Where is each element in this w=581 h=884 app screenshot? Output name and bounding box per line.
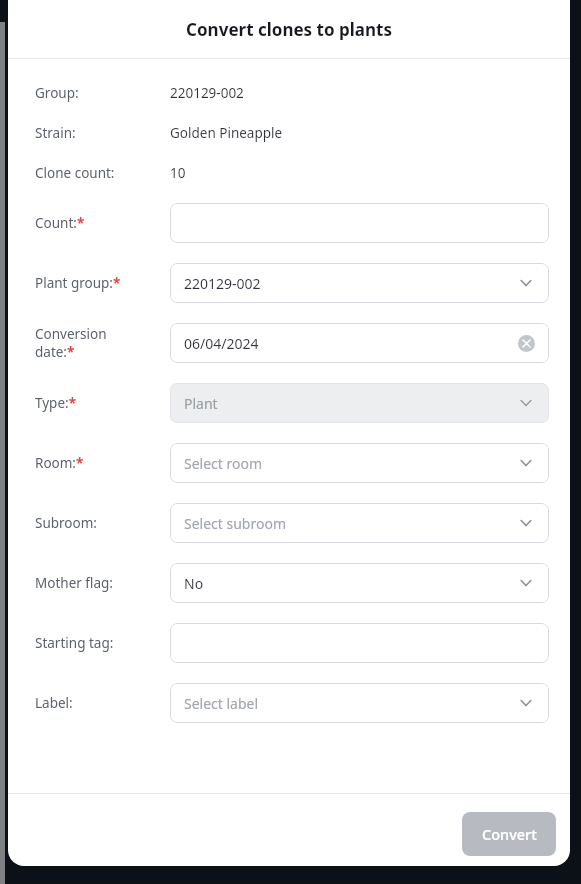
staticText: Convert clones to plants: [186, 18, 392, 41]
staticText: 220129-002: [184, 274, 261, 293]
staticText: Plant: [184, 394, 218, 413]
staticText: No: [184, 574, 204, 593]
button[interactable]: [170, 623, 549, 663]
staticText: Count:*: [35, 214, 85, 232]
button[interactable]: [170, 203, 549, 243]
staticText: Type:*: [35, 394, 76, 412]
button[interactable]: Clear date: [518, 335, 535, 352]
staticText: Mother flag:: [35, 574, 113, 592]
button[interactable]: Select label: [170, 683, 549, 723]
button[interactable]: Convert: [462, 812, 556, 856]
staticText: Clone count:: [35, 164, 115, 182]
staticText: 10: [170, 164, 186, 182]
staticText: 06/04/2024: [184, 334, 259, 353]
button[interactable]: No: [170, 563, 549, 603]
button[interactable]: 220129-002: [170, 263, 549, 303]
staticText: date:*: [35, 343, 75, 361]
button[interactable]: Plant: [170, 383, 549, 423]
button[interactable]: 06/04/2024: [170, 323, 549, 363]
staticText: Room:*: [35, 454, 84, 472]
staticText: Convert: [482, 824, 537, 844]
staticText: Starting tag:: [35, 634, 114, 652]
staticText: Golden Pineapple: [170, 124, 283, 142]
staticText: Strain:: [35, 124, 76, 142]
staticText: Conversion: [35, 325, 107, 343]
staticText: Select subroom: [184, 514, 287, 533]
button[interactable]: Select room: [170, 443, 549, 483]
staticText: 220129-002: [170, 84, 244, 102]
staticText: Select label: [184, 694, 259, 713]
staticText: Plant group:*: [35, 274, 121, 292]
staticText: Group:: [35, 84, 79, 102]
staticText: Label:: [35, 694, 73, 712]
staticText: Subroom:: [35, 514, 97, 532]
button[interactable]: Select subroom: [170, 503, 549, 543]
staticText: Select room: [184, 454, 263, 473]
